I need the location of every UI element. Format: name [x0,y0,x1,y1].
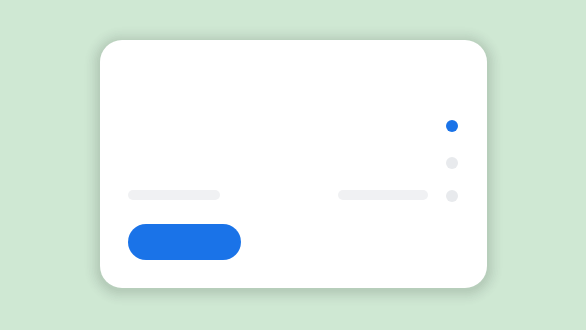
button[interactable]: Primary action [128,224,241,260]
button[interactable]: Step 2 [446,157,458,169]
button[interactable]: Step 3 [446,190,458,202]
button[interactable] [100,40,487,288]
button[interactable]: Step 1, current [446,120,458,132]
